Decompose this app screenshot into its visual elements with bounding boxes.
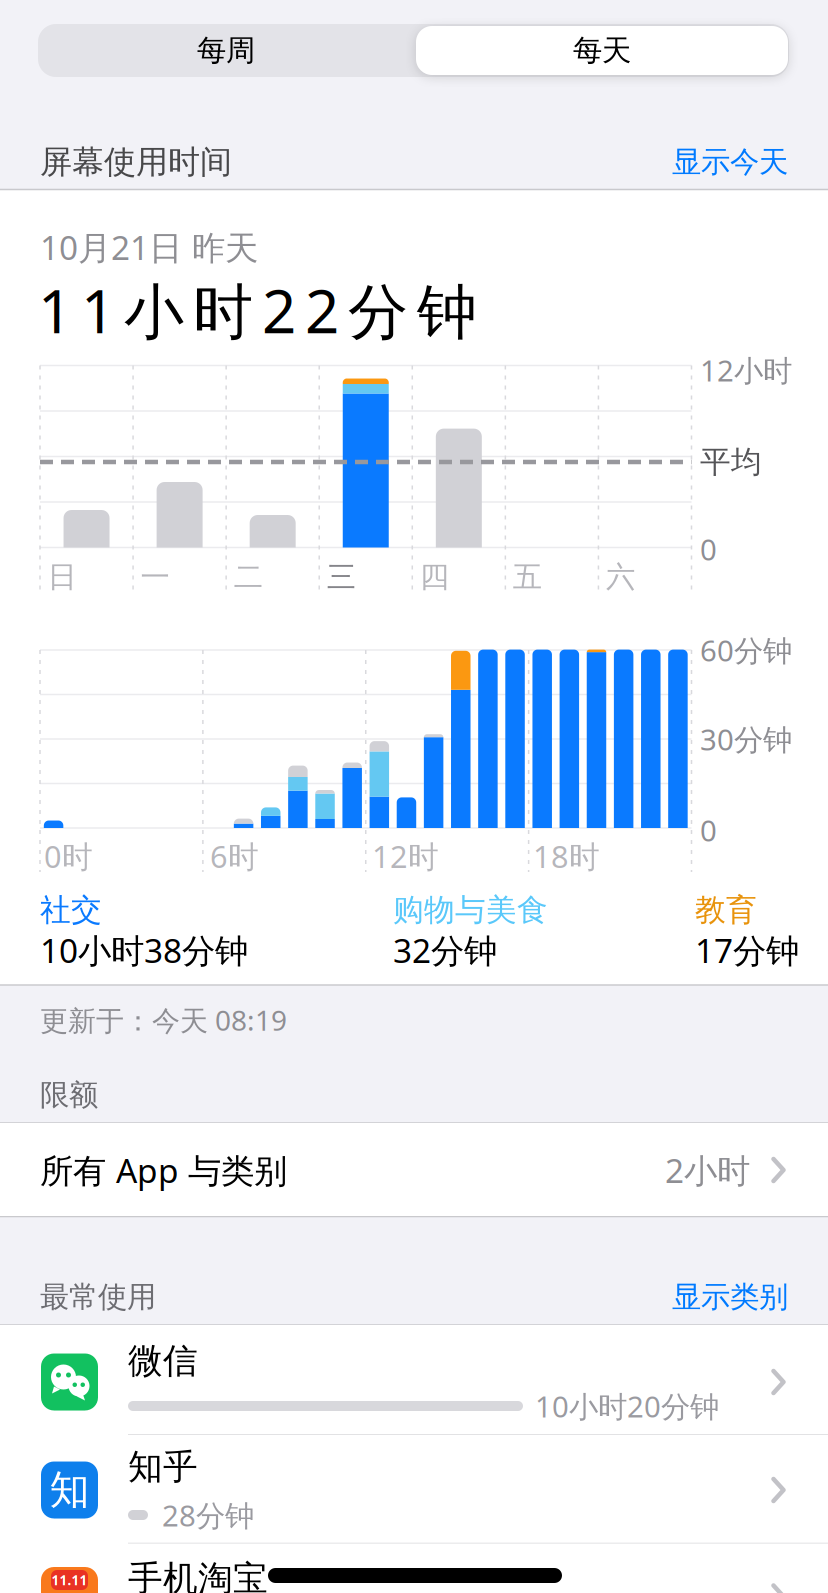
staticText: 30分钟: [700, 719, 792, 758]
button[interactable]: 每周: [38, 24, 413, 77]
button[interactable]: 微信: [0, 1325, 828, 1435]
staticText: 更新于：今天 08:19: [40, 1001, 287, 1039]
button[interactable]: 显示类别: [568, 1279, 788, 1315]
staticText: 显示今天: [672, 144, 788, 180]
staticText: 10月21日 昨天: [40, 225, 258, 269]
staticText: 2小时: [665, 1148, 750, 1192]
staticText: 二: [234, 559, 263, 595]
staticText: 18时: [533, 836, 600, 876]
staticText: 12小时: [700, 350, 792, 389]
button[interactable]: 11.11: [0, 1543, 828, 1593]
staticText: 10小时20分钟: [535, 1386, 719, 1425]
staticText: 日: [47, 559, 76, 595]
staticText: 屏幕使用时间: [40, 142, 232, 182]
staticText: 0: [700, 529, 717, 568]
staticText: 四: [420, 559, 449, 595]
staticText: 平均: [700, 443, 762, 481]
staticText: 限额: [40, 1077, 98, 1113]
staticText: 28分钟: [162, 1495, 254, 1534]
staticText: 微信: [128, 1340, 198, 1382]
staticText: 知: [49, 1465, 89, 1514]
staticText: 社交: [40, 891, 102, 929]
staticText: 最常使用: [40, 1279, 156, 1315]
staticText: 手机淘宝: [128, 1557, 268, 1593]
staticText: 六: [606, 559, 635, 595]
button[interactable]: 知: [0, 1435, 828, 1543]
staticText: 显示类别: [672, 1279, 788, 1315]
staticText: 三: [327, 559, 356, 595]
staticText: 每周: [197, 32, 255, 68]
staticText: 10小时38分钟: [40, 928, 248, 972]
staticText: 60分钟: [700, 630, 792, 669]
staticText: 0: [700, 810, 717, 849]
staticText: 11小时22分钟: [38, 270, 477, 350]
staticText: 所有 App 与类别: [40, 1148, 287, 1192]
staticText: 17分钟: [695, 928, 799, 972]
staticText: 购物与美食: [393, 891, 548, 929]
staticText: 32分钟: [393, 928, 497, 972]
button[interactable]: 每天: [416, 26, 788, 75]
staticText: 12时: [372, 836, 439, 876]
staticText: 五: [513, 559, 542, 595]
staticText: 0时: [44, 836, 93, 876]
staticText: 知乎: [128, 1446, 198, 1488]
staticText: 每天: [573, 32, 631, 68]
staticText: 教育: [695, 891, 757, 929]
button[interactable]: 显示今天: [568, 144, 788, 180]
staticText: 11.11: [51, 1571, 87, 1589]
staticText: 一: [141, 559, 170, 595]
staticText: 6时: [210, 836, 259, 876]
button[interactable]: 所有 App 与类别: [0, 1123, 828, 1216]
